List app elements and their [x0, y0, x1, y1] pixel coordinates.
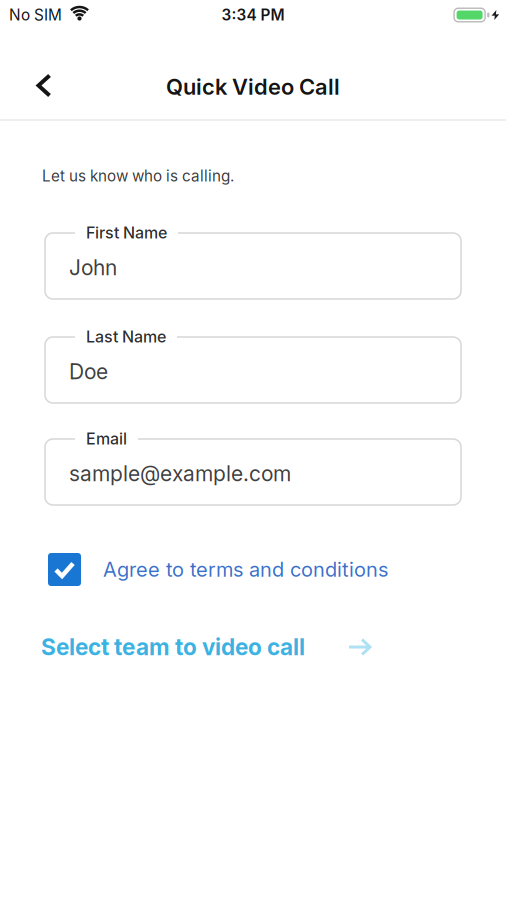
staticText: Agree to terms and conditions	[103, 557, 388, 582]
staticText: No SIM	[9, 6, 62, 24]
button[interactable]: Select team to video call	[41, 633, 371, 661]
staticText: 3:34 PM	[221, 6, 284, 24]
staticText: Doe	[69, 359, 108, 384]
button[interactable]: John	[45, 233, 461, 299]
staticText: Quick Video Call	[166, 73, 340, 100]
staticText: John	[69, 255, 117, 280]
staticText: Let us know who is calling.	[42, 167, 234, 185]
staticText: Last Name	[86, 327, 166, 346]
button[interactable]: Doe	[45, 337, 461, 403]
staticText: Select team to video call	[41, 633, 305, 661]
staticText: sample@example.com	[69, 461, 291, 486]
button[interactable]: Agree to terms and conditions	[48, 553, 388, 586]
staticText: Email	[86, 429, 127, 448]
button[interactable]: sample@example.com	[45, 439, 461, 505]
button[interactable]: Back	[22, 63, 66, 107]
staticText: First Name	[86, 223, 167, 242]
